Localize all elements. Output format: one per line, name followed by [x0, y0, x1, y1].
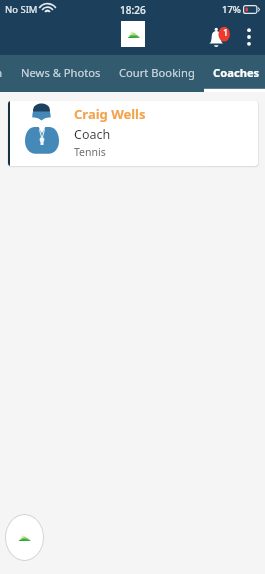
staticText: Information: [0, 65, 3, 80]
button[interactable]: Club home: [5, 514, 44, 561]
button[interactable]: Home: [121, 21, 145, 47]
staticText: Coach: [74, 126, 111, 143]
staticText: No SIM: [5, 3, 38, 16]
staticText: Coaches: [213, 65, 260, 80]
staticText: News & Photos: [21, 65, 101, 80]
button[interactable]: Craig Wells: [8, 101, 258, 166]
staticText: 18:26: [120, 3, 146, 17]
staticText: Tennis: [74, 145, 106, 159]
button[interactable]: More options: [240, 25, 258, 49]
button[interactable]: Coaches: [204, 55, 265, 92]
staticText: 17%: [222, 3, 241, 16]
staticText: Court Booking: [119, 65, 195, 80]
staticText: Craig Wells: [74, 105, 146, 123]
staticText: 1: [223, 26, 229, 38]
button[interactable]: Court Booking: [110, 55, 204, 92]
button[interactable]: Information: [0, 55, 12, 92]
button[interactable]: Notifications: [206, 24, 230, 50]
button[interactable]: News & Photos: [12, 55, 110, 92]
